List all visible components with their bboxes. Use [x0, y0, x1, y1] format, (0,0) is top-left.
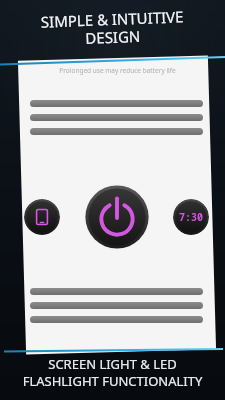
button[interactable]: Slider — [30, 316, 203, 323]
button[interactable]: Slider — [30, 128, 203, 135]
staticText: SIMPLE & INTUITIVE DESIGN — [0, 5, 225, 52]
button[interactable]: Screen light — [24, 199, 60, 235]
button[interactable]: Slider — [30, 288, 203, 295]
staticText: Prolonged use may reduce battery life — [10, 66, 225, 75]
button[interactable]: Slider — [30, 302, 203, 309]
button[interactable]: Slider — [30, 114, 203, 121]
button[interactable]: Slider — [30, 100, 203, 107]
button[interactable]: Timer 7:30 — [173, 199, 209, 235]
staticText: 7:30 — [179, 210, 203, 224]
button[interactable]: Power toggle flashlight — [83, 183, 151, 251]
staticText: SCREEN LIGHT & LED FLASHLIGHT FUNCTIONAL… — [0, 355, 225, 390]
